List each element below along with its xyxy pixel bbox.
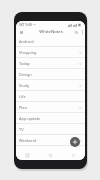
button[interactable]: Recent apps	[16, 151, 39, 160]
staticText: SKT 9:48	[19, 23, 32, 27]
button[interactable]: Android	[16, 36, 85, 46]
button[interactable]: Add note	[70, 137, 80, 147]
button[interactable]: Weekend	[16, 135, 85, 145]
staticText: WhiteNotes	[39, 29, 63, 35]
button[interactable]: Open navigation menu	[17, 28, 25, 36]
staticText: TV	[19, 127, 24, 132]
button[interactable]: App update	[16, 113, 85, 123]
staticText: Life	[19, 94, 26, 99]
button[interactable]: Plan	[16, 102, 85, 112]
staticText: Weekend	[19, 138, 36, 143]
staticText: Today	[19, 61, 30, 66]
staticText: Shopping	[19, 50, 37, 55]
button[interactable]: Search	[72, 28, 80, 36]
button[interactable]: More options	[80, 28, 85, 36]
button[interactable]: Back	[62, 151, 85, 160]
button[interactable]: Shopping	[16, 47, 85, 57]
button[interactable]: Study	[16, 80, 85, 90]
staticText: Study	[19, 83, 30, 88]
button[interactable]: Life	[16, 91, 85, 101]
staticText: App update	[19, 116, 41, 121]
staticText: Android	[19, 39, 34, 44]
button[interactable]: Today	[16, 58, 85, 68]
staticText: Design	[19, 72, 32, 77]
button[interactable]: TV	[16, 124, 85, 134]
button[interactable]: Home	[39, 151, 62, 160]
staticText: Plan	[19, 105, 27, 110]
button[interactable]: Design	[16, 69, 85, 79]
